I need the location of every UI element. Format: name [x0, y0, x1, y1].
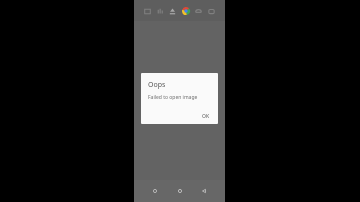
- staticText: Oops: [148, 80, 166, 90]
- staticText: OK: [202, 113, 210, 120]
- staticText: Failed to open image: [148, 94, 198, 101]
- button[interactable]: Recents: [148, 184, 162, 198]
- button[interactable]: OK: [199, 112, 213, 121]
- button[interactable]: Back: [197, 184, 211, 198]
- button[interactable]: Home: [173, 184, 187, 198]
